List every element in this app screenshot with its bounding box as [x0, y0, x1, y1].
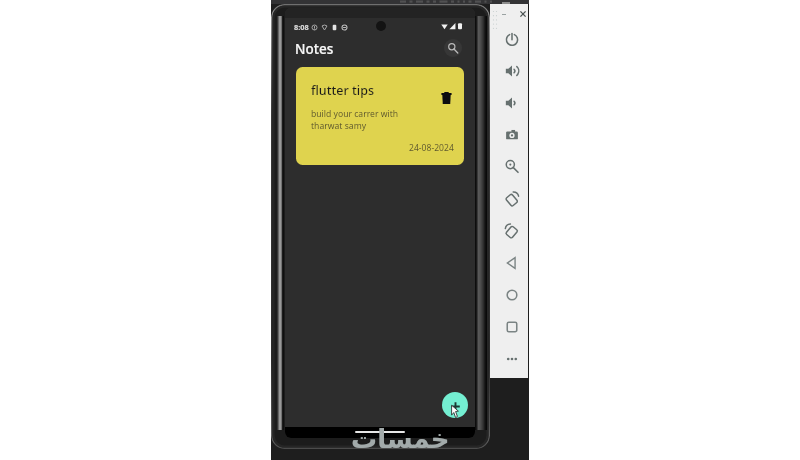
button[interactable]: Volume up: [503, 62, 521, 80]
staticText: flutter tips: [311, 82, 374, 99]
staticText: 8:08: [294, 22, 309, 32]
staticText: 24-08-2024: [409, 142, 454, 154]
staticText: build your carrer with: [311, 108, 399, 120]
button[interactable]: Volume down: [503, 94, 521, 112]
button[interactable]: Rotate left: [503, 190, 521, 208]
button[interactable]: Zoom: [503, 157, 521, 175]
button[interactable]: Take screenshot: [503, 126, 521, 144]
button[interactable]: Power: [503, 30, 521, 48]
button[interactable]: Rotate right: [503, 222, 521, 240]
button[interactable]: Recent apps: [503, 318, 521, 336]
button[interactable]: flutter tips: [296, 67, 464, 165]
button[interactable]: Add note: [442, 392, 468, 418]
button[interactable]: Close: [519, 10, 527, 18]
button[interactable]: Home: [503, 286, 521, 304]
button[interactable]: More options: [503, 350, 521, 368]
staticText: Notes: [295, 40, 334, 58]
staticText: خمسات: [351, 424, 450, 454]
staticText: tharwat samy: [311, 120, 367, 132]
button[interactable]: Search: [444, 39, 462, 57]
button[interactable]: Back: [503, 254, 521, 272]
button[interactable]: Delete note: [439, 91, 453, 105]
button[interactable]: Minimize: [500, 10, 508, 18]
